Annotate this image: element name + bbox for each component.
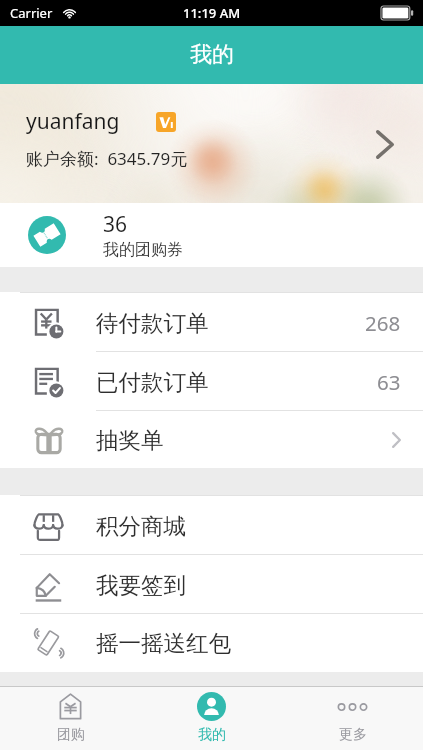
button[interactable]: 抽奖单 <box>0 411 423 468</box>
staticText: 积分商城 <box>96 512 186 540</box>
staticText: 63 <box>377 368 401 396</box>
staticText: yuanfang <box>26 107 120 136</box>
button[interactable]: 积分商城 <box>0 496 423 555</box>
staticText: 我的 <box>190 41 234 69</box>
button[interactable]: 我要签到 <box>0 555 423 614</box>
button[interactable]: yuanfang <box>0 84 423 203</box>
staticText: 已付款订单 <box>96 368 209 396</box>
button[interactable]: 团购 <box>0 687 141 750</box>
other: Account details <box>367 126 403 162</box>
staticText: 摇一摇送红包 <box>96 629 231 657</box>
button[interactable]: 已付款订单 <box>0 352 423 411</box>
staticText: 我的 <box>198 726 226 744</box>
staticText: 待付款订单 <box>96 309 209 337</box>
staticText: 更多 <box>339 726 367 744</box>
staticText: 团购 <box>57 726 85 744</box>
button[interactable]: 更多 <box>282 687 423 750</box>
staticText: 36 <box>103 210 128 239</box>
staticText: Carrier <box>10 4 53 22</box>
staticText: 268 <box>365 309 401 337</box>
button[interactable]: 待付款订单 <box>0 293 423 352</box>
staticText: 抽奖单 <box>96 426 164 454</box>
button[interactable]: 36 <box>0 203 423 267</box>
staticText: 我要签到 <box>96 571 186 599</box>
button[interactable]: 我的 <box>141 687 282 750</box>
button[interactable]: 摇一摇送红包 <box>0 614 423 672</box>
staticText: 账户余额: 6345.79元 <box>26 147 188 170</box>
staticText: 我的团购券 <box>103 240 183 260</box>
staticText: 11:19 AM <box>183 4 241 22</box>
